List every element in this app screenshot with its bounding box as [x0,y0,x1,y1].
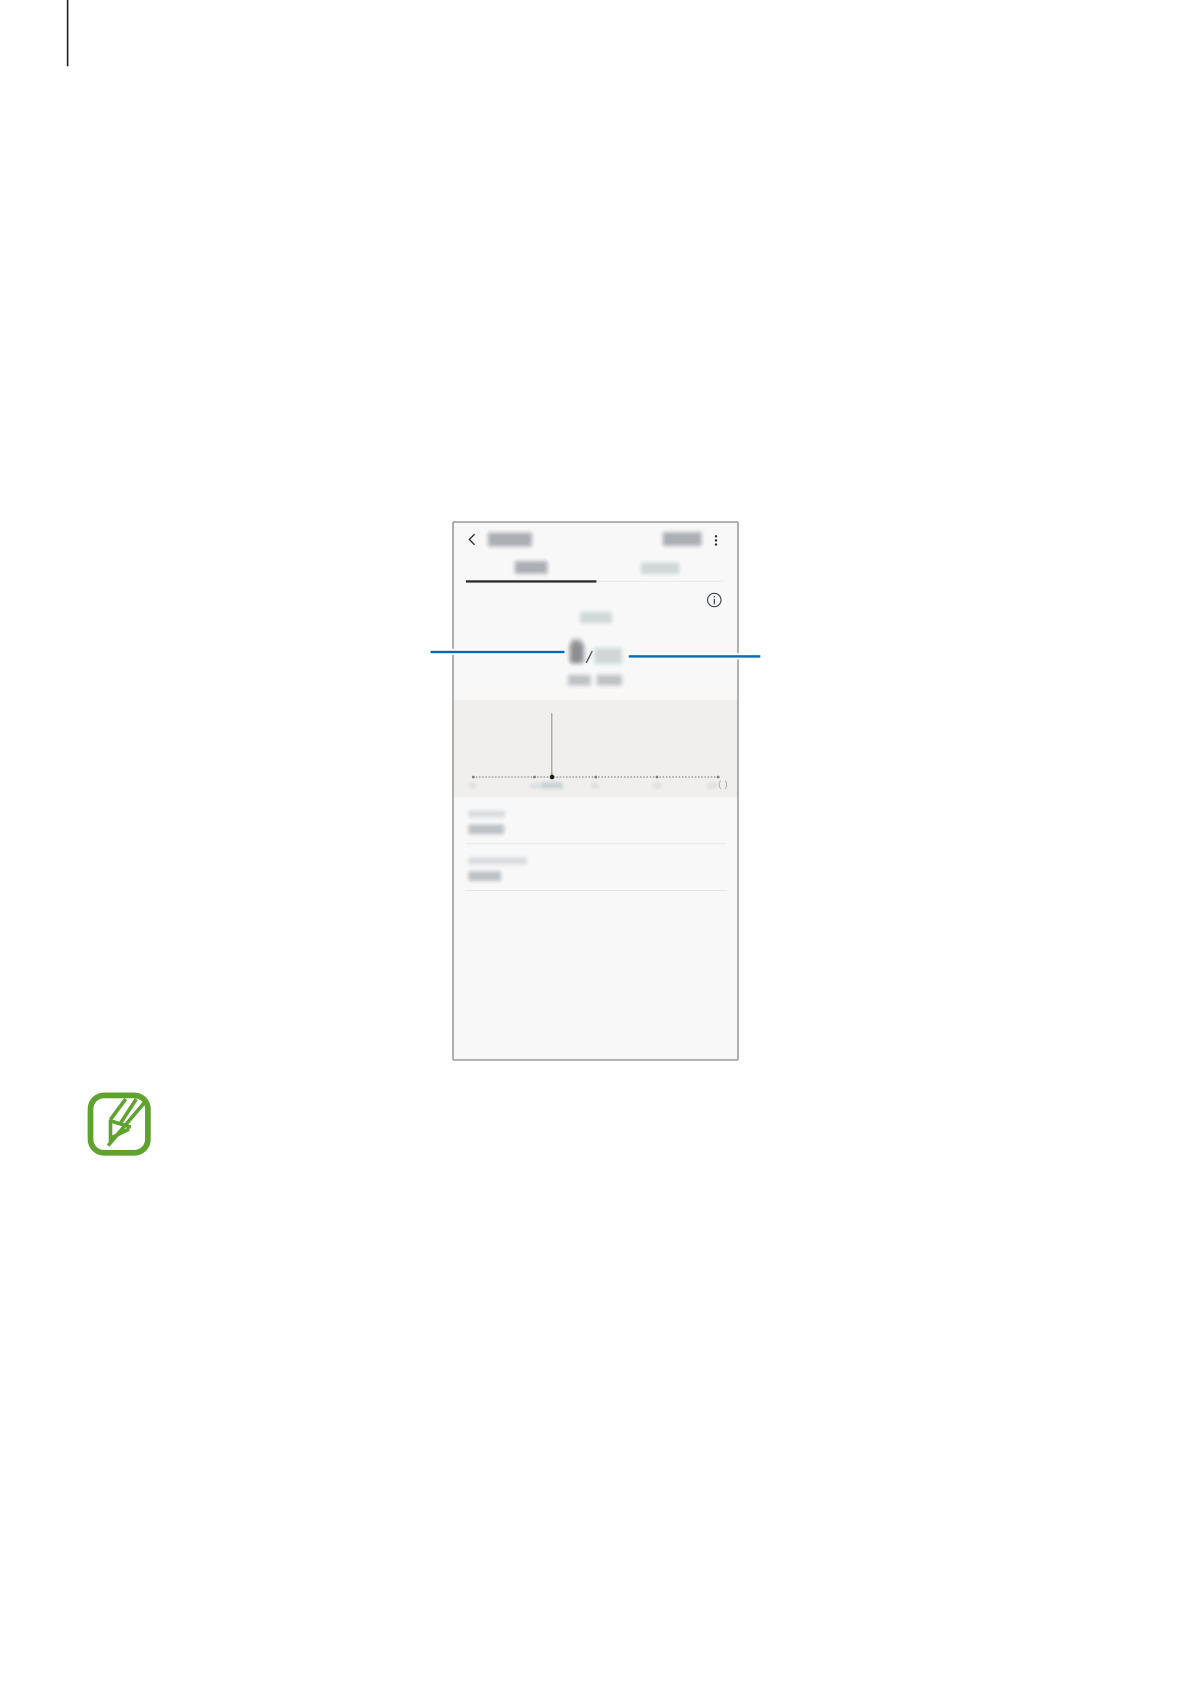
button[interactable]: More options [703,522,729,556]
button[interactable] [453,797,738,844]
button[interactable] [656,522,708,556]
button[interactable] [453,844,738,891]
button[interactable] [596,556,724,580]
button[interactable]: Back [453,522,483,556]
button[interactable] [466,555,596,579]
button[interactable]: Information [699,585,729,615]
